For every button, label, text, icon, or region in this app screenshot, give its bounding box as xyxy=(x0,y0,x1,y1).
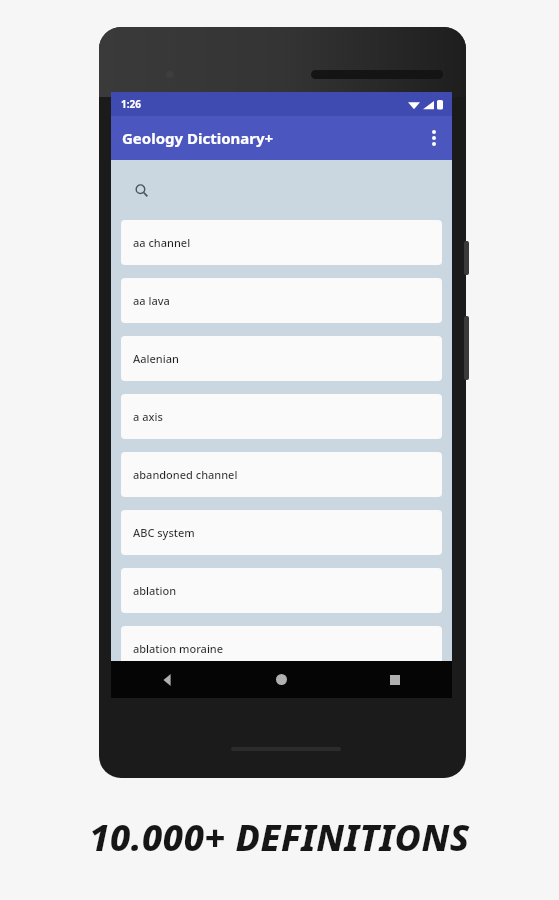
button[interactable]: a axis xyxy=(121,394,442,439)
staticText: ABC system xyxy=(133,525,195,540)
button[interactable]: ABC system xyxy=(121,510,442,555)
staticText: ablation moraine xyxy=(133,641,224,656)
button[interactable]: Home xyxy=(224,661,338,698)
staticText: abandoned channel xyxy=(133,467,238,482)
staticText: ablation xyxy=(133,583,177,598)
button[interactable]: More options xyxy=(416,120,452,156)
button[interactable]: Aalenian xyxy=(121,336,442,381)
button[interactable]: aa channel xyxy=(121,220,442,265)
staticText: 10.000+ DEFINITIONS xyxy=(89,813,470,862)
button[interactable]: Recent apps xyxy=(338,661,452,698)
button[interactable]: Back xyxy=(111,661,224,698)
button[interactable]: aa lava xyxy=(121,278,442,323)
staticText: a axis xyxy=(133,409,163,424)
staticText: Geology Dictionary+ xyxy=(122,128,274,148)
staticText: Aalenian xyxy=(133,351,179,366)
button[interactable]: abandoned channel xyxy=(121,452,442,497)
button[interactable]: Search xyxy=(111,160,452,220)
button[interactable]: ablation moraine xyxy=(121,626,442,671)
staticText: aa channel xyxy=(133,235,191,250)
staticText: aa lava xyxy=(133,293,170,308)
button[interactable]: ablation xyxy=(121,568,442,613)
staticText: 1:26 xyxy=(121,97,141,111)
